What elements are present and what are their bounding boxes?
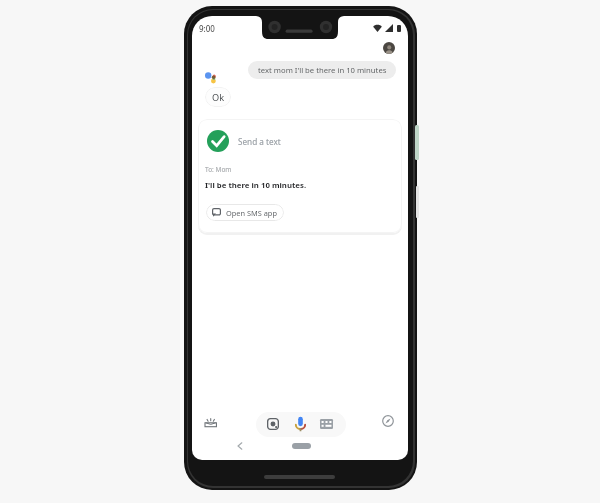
button[interactable]: Ok — [205, 87, 231, 107]
button[interactable]: text mom I'll be there in 10 minutes — [248, 61, 396, 79]
staticText: I'll be there in 10 minutes. — [205, 180, 307, 191]
button[interactable]: Voice search — [293, 415, 308, 433]
staticText: 9:00 — [199, 23, 215, 34]
staticText: text mom I'll be there in 10 minutes — [258, 65, 387, 75]
button[interactable]: Explore — [382, 415, 394, 427]
button[interactable]: Keyboard — [320, 419, 333, 429]
button[interactable]: Updates — [205, 415, 218, 428]
button[interactable]: Google account — [383, 42, 395, 54]
staticText: Open SMS app — [226, 208, 277, 218]
button[interactable]: Open SMS app — [206, 204, 284, 221]
staticText: Send a text — [238, 136, 281, 147]
staticText: Ok — [212, 91, 225, 104]
button[interactable]: Home — [292, 443, 311, 449]
staticText: To: Mom — [205, 165, 232, 174]
button[interactable]: Back — [237, 442, 243, 450]
button[interactable]: Google Lens — [267, 418, 279, 430]
